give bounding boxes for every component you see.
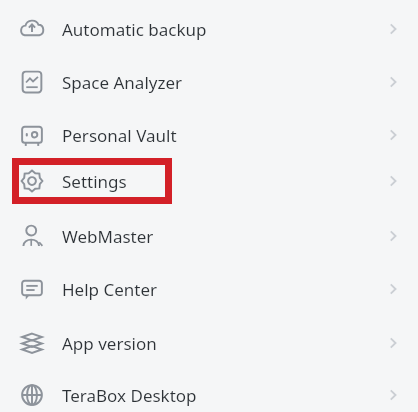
staticText: App version xyxy=(62,332,157,355)
staticText: Personal Vault xyxy=(62,124,177,147)
button[interactable]: App version xyxy=(0,317,418,369)
staticText: Settings xyxy=(62,170,127,193)
staticText: TeraBox Desktop xyxy=(62,384,197,407)
staticText: Automatic backup xyxy=(62,18,207,41)
button[interactable]: Personal Vault xyxy=(0,109,418,161)
button[interactable]: TeraBox Desktop xyxy=(0,369,418,412)
button[interactable]: Automatic backup xyxy=(0,3,418,55)
staticText: WebMaster xyxy=(62,225,154,248)
button[interactable]: Space Analyzer xyxy=(0,56,418,108)
button[interactable]: WebMaster xyxy=(0,210,418,262)
button[interactable]: Settings xyxy=(0,155,418,207)
button[interactable]: Help Center xyxy=(0,263,418,315)
staticText: Space Analyzer xyxy=(62,71,183,94)
staticText: Help Center xyxy=(62,278,158,301)
